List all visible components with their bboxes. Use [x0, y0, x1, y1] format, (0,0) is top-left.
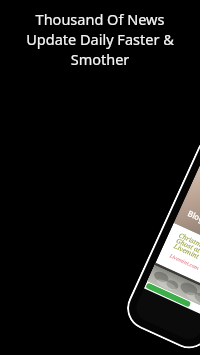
- staticText: Thousand Of News Update Daily Faster & S…: [22, 9, 178, 69]
- staticText: Blog: [186, 207, 200, 225]
- staticText: Livemint.com - 2 hrs ago: [168, 252, 200, 283]
- button[interactable]: Read more: [145, 282, 191, 308]
- staticText: Christmas Ghost at Livemint: [172, 230, 200, 262]
